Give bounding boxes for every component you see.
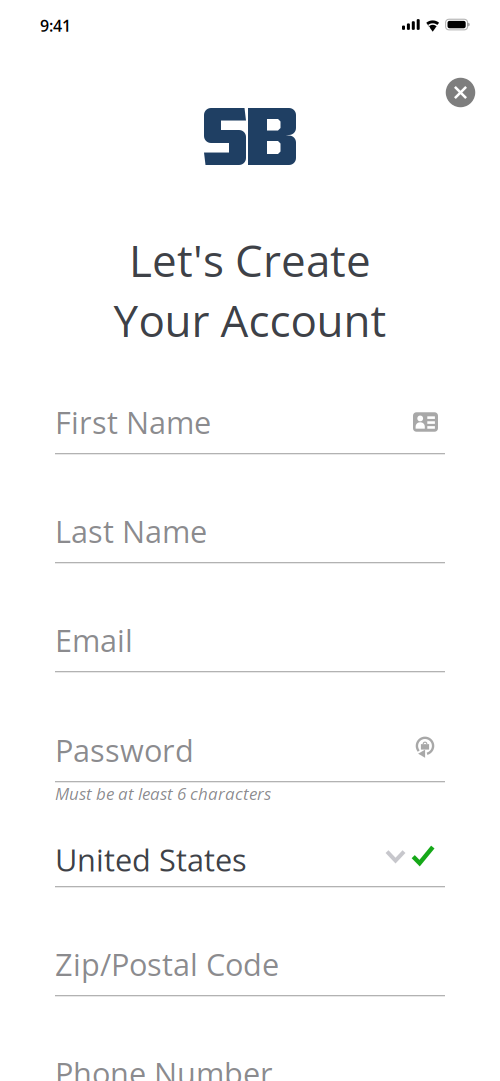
staticText: Let's Create (129, 230, 371, 290)
staticText: Password (55, 729, 194, 771)
button[interactable]: Phone Number (55, 996, 445, 1081)
button[interactable]: Password (55, 672, 445, 782)
button[interactable]: Email (55, 563, 445, 672)
button[interactable]: First Name (55, 350, 445, 454)
staticText: 9:41 (40, 15, 71, 36)
button[interactable]: Zip/Postal Code (55, 887, 445, 996)
staticText: Phone Number (55, 1052, 273, 1081)
button[interactable]: United States (55, 803, 445, 887)
staticText: United States (55, 839, 247, 880)
staticText: Zip/Postal Code (55, 943, 279, 985)
staticText: Email (55, 619, 133, 661)
staticText: Last Name (55, 510, 207, 552)
button[interactable]: Last Name (55, 454, 445, 563)
button[interactable]: Close (438, 70, 482, 114)
staticText: First Name (55, 401, 211, 443)
staticText: Must be at least 6 characters (55, 782, 271, 805)
staticText: Your Account (113, 290, 386, 350)
